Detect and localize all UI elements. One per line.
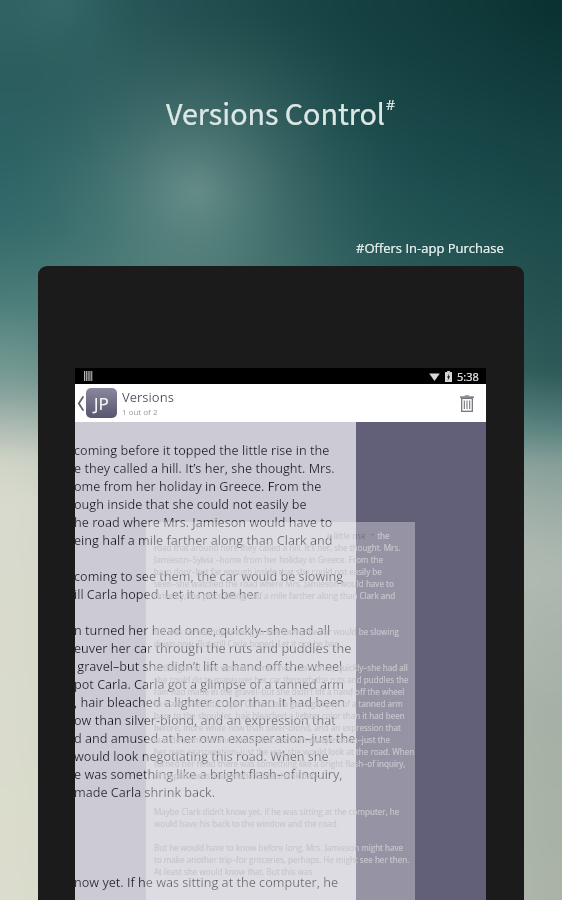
staticText: But he would have to know before long. M… bbox=[154, 842, 404, 853]
staticText: to wave, she didn’t spot Carla. Carla go… bbox=[154, 698, 403, 709]
staticText: turned her head there was something like… bbox=[154, 758, 406, 769]
staticText: gravel–but she didn’t lift a hand off th… bbox=[75, 657, 343, 674]
staticText: would look negotiating this road. When s… bbox=[75, 747, 329, 764]
staticText: eing half a mile farther along than Clar… bbox=[75, 531, 333, 548]
staticText: d and amused at her own exasperation–jus… bbox=[75, 729, 356, 746]
staticText: made Carla shrink back. bbox=[75, 783, 216, 800]
staticText: he road where Mrs. Jamieson would have t… bbox=[75, 513, 333, 530]
staticText: ough inside that she could not easily be bbox=[75, 495, 307, 512]
staticText: If it was somebody coming to see them, t… bbox=[154, 626, 399, 637]
staticText: barn door–but far enough inside that she… bbox=[154, 566, 382, 577]
staticText: Versions bbox=[122, 388, 174, 406]
staticText: was determined and amused at her own exa… bbox=[154, 734, 391, 745]
staticText: ill Carla hoped. Let it not be her. bbox=[75, 585, 263, 602]
staticText: JP bbox=[94, 392, 109, 415]
staticText: 5:38 bbox=[457, 369, 479, 384]
staticText: e little rise in the bbox=[356, 530, 386, 552]
staticText: before, more white now than silver-blond… bbox=[154, 722, 401, 733]
staticText: in the gravel. The woman turned her head… bbox=[154, 662, 408, 673]
staticText: rain had made in the gravel–but she didn… bbox=[154, 686, 405, 697]
staticText: would have his back to the window and th… bbox=[154, 818, 339, 829]
staticText: ow than silver-blond, and an expression … bbox=[75, 711, 336, 728]
staticText: e was something like a bright flash–of i… bbox=[75, 765, 343, 782]
staticText: pot Carla. Carla got a glimpse of a tann… bbox=[75, 675, 344, 692]
button[interactable]: Back bbox=[75, 384, 86, 422]
staticText: of hopefulness–that made Carla shrink ba… bbox=[154, 770, 322, 781]
staticText: , hair bleached a lighter color than it … bbox=[75, 693, 345, 710]
staticText: her own exasperation–just the way she wo… bbox=[154, 746, 415, 757]
staticText: Maybe Clark didn’t know yet. If he was s… bbox=[154, 806, 400, 817]
staticText: ome from her holiday in Greece. From the bbox=[75, 477, 322, 494]
staticText: 1 out of 2 bbox=[122, 406, 158, 417]
staticText: n turned her head once, quickly–she had … bbox=[75, 621, 331, 638]
staticText: seen–she watched the road where Mrs. Jam… bbox=[154, 578, 394, 589]
staticText: bare to the shoulder, hair bleached a li… bbox=[154, 710, 405, 721]
staticText: Versions Control bbox=[166, 92, 386, 138]
staticText: # bbox=[386, 95, 396, 114]
staticText: #Offers In-app Purchase bbox=[356, 239, 504, 257]
staticText: to make another trip–for groceries, perh… bbox=[154, 854, 410, 865]
staticText: road that around here they called a hill… bbox=[154, 542, 401, 553]
staticText: e little rise in the bbox=[327, 530, 390, 541]
staticText: drive by, the place being half a mile fa… bbox=[154, 590, 396, 601]
staticText: euver her car through the ruts and puddl… bbox=[75, 639, 352, 656]
staticText: e they called a hill. It’s her, she thou… bbox=[75, 459, 335, 476]
staticText: now yet. If he was sitting at the comput… bbox=[75, 873, 339, 890]
button[interactable]: Delete bbox=[448, 384, 486, 422]
staticText: Jamieson–Sylvia –home from her holiday i… bbox=[154, 554, 384, 565]
staticText: At least she would know that. But this w… bbox=[154, 866, 313, 877]
staticText: down now. But still Carla hoped. Let it … bbox=[154, 638, 340, 649]
staticText: coming before it topped the little rise … bbox=[75, 441, 330, 458]
staticText: coming to see them, the car would be slo… bbox=[75, 567, 344, 584]
staticText: she could do to maneuver her car through… bbox=[154, 674, 409, 685]
